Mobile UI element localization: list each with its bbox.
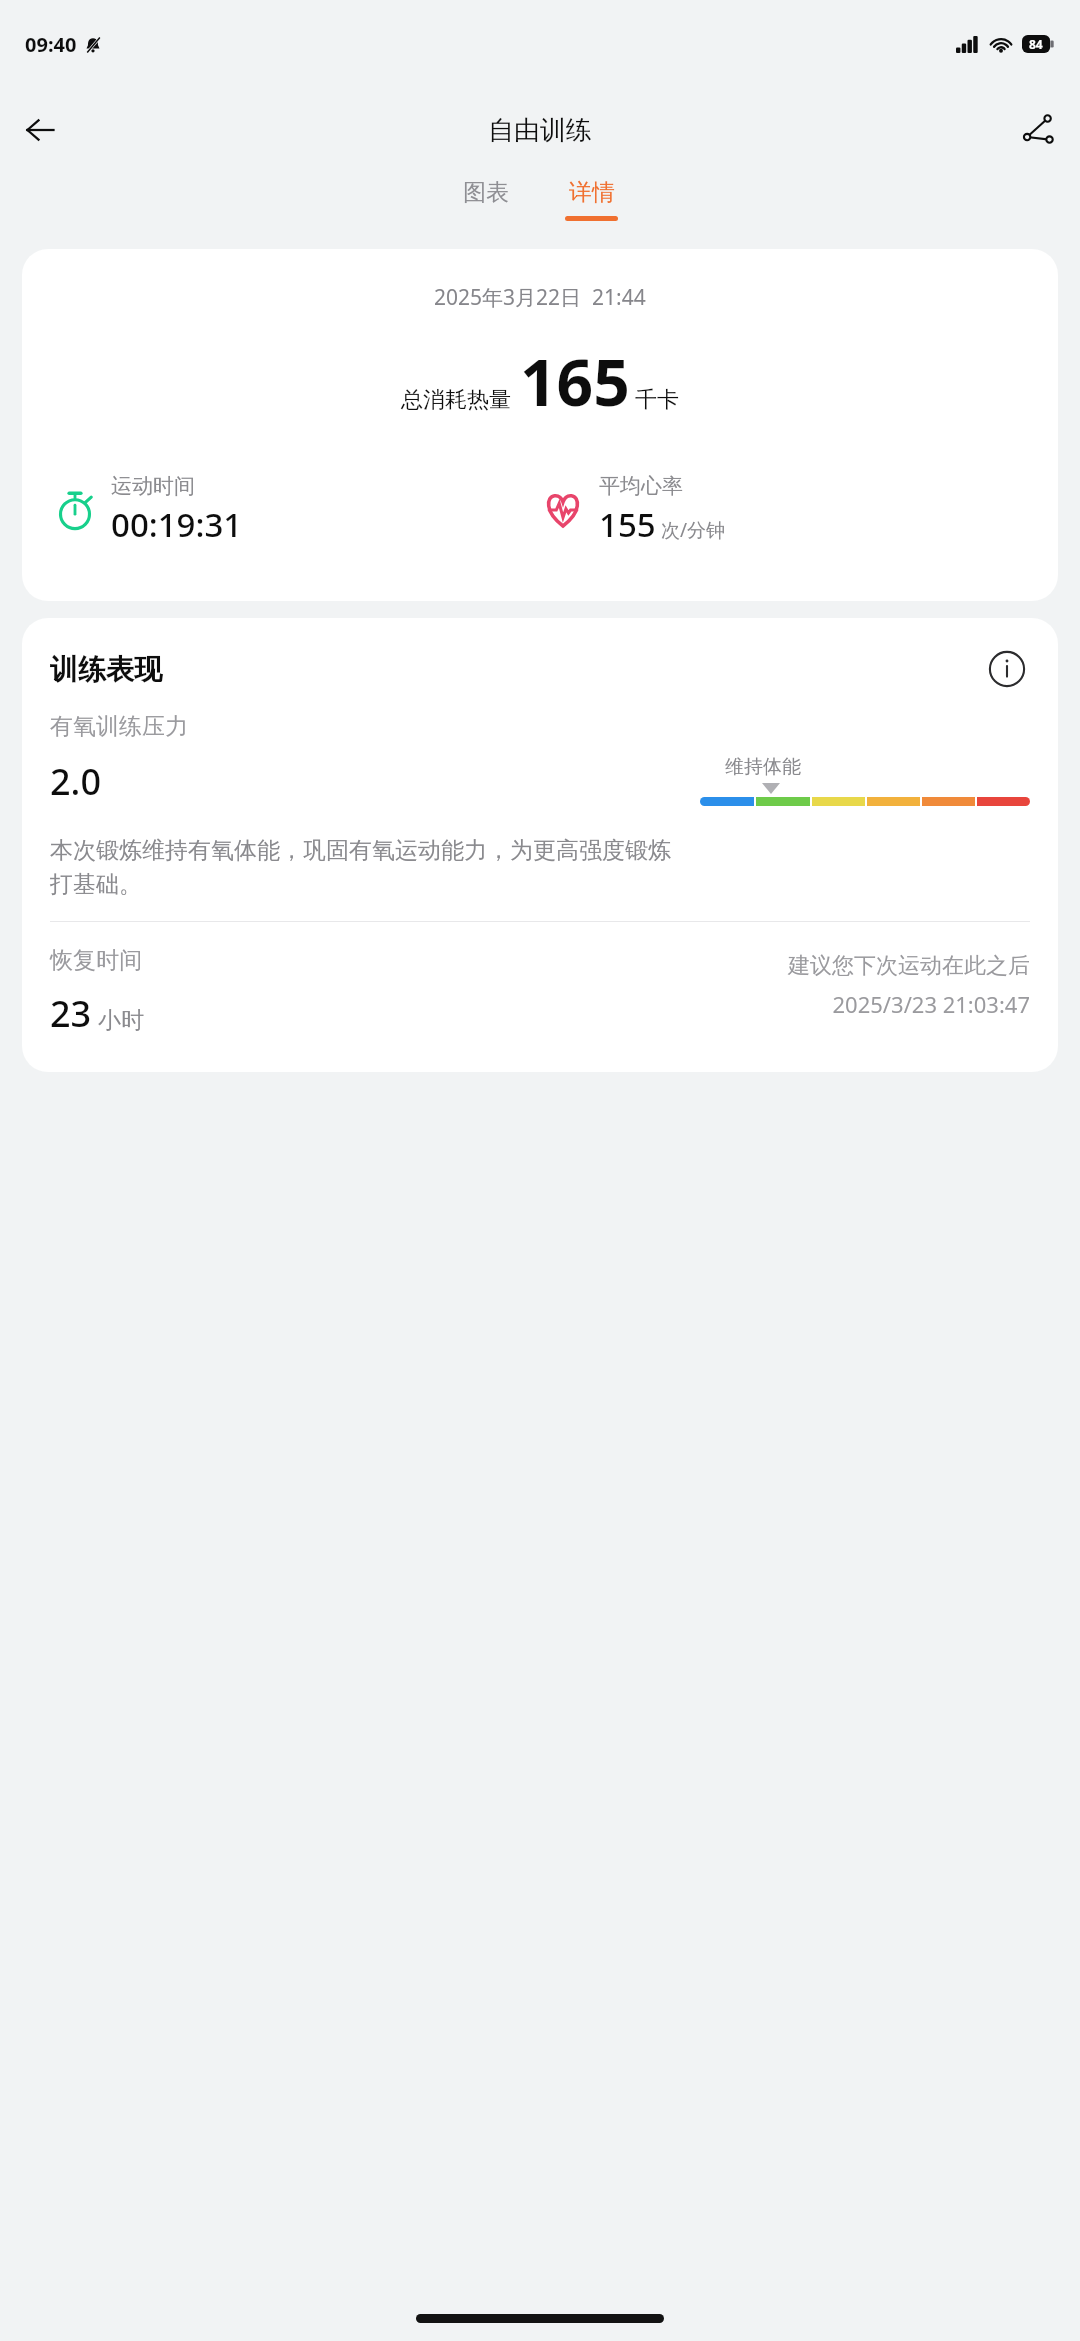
staticText: 维持体能 [725,755,801,779]
staticText: 00:19:31 [111,502,243,547]
staticText: 小时 [98,1006,144,1035]
staticText: 155 [599,502,656,547]
staticText: 2025/3/23 21:03:47 [832,989,1030,1019]
staticText: 建议您下次运动在此之后 [788,952,1030,980]
button[interactable]: Share [1010,102,1066,158]
staticText: 运动时间 [111,473,195,499]
staticText: 165 [520,338,630,425]
button[interactable]: Info [984,646,1030,692]
button[interactable]: Back [12,102,68,158]
staticText: 本次锻炼维持有氧体能，巩固有氧运动能力，为更高强度锻炼 打基础。 [50,836,671,899]
staticText: 2.0 [50,757,101,806]
staticText: 自由训练 [488,114,592,147]
staticText: 平均心率 [599,473,683,499]
staticText: 84 [1029,36,1043,52]
button[interactable]: 2025年3月22日 21:44 [22,249,1058,601]
staticText: 图表 [463,178,509,207]
button[interactable]: 详情 [549,172,634,227]
staticText: 09:40 [25,31,77,58]
button[interactable]: 图表 [447,172,525,213]
staticText: 训练表现 [50,652,162,687]
staticText: 总消耗热量 [401,386,511,414]
staticText: 有氧训练压力 [50,712,188,741]
staticText: 恢复时间 [50,946,142,975]
staticText: 详情 [569,178,615,207]
staticText: 千卡 [635,386,679,414]
staticText: 2025年3月22日 21:44 [434,283,646,312]
staticText: 次/分钟 [661,517,726,543]
staticText: 23 [50,989,92,1038]
